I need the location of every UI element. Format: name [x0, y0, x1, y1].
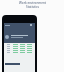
- staticText: Statistics: [26, 5, 39, 9]
- staticText: Work environment: [19, 1, 46, 5]
- button[interactable]: More: [2, 15, 37, 72]
